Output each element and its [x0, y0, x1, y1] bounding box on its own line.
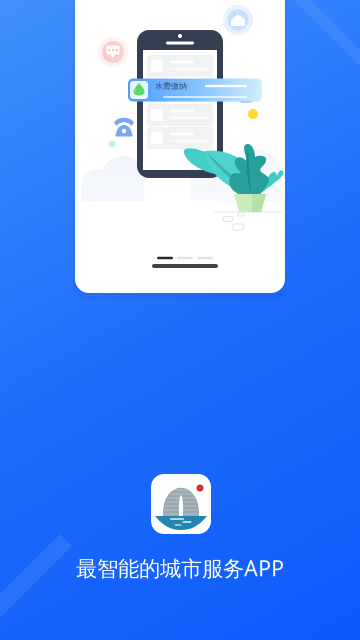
button[interactable]: App icon	[151, 474, 211, 534]
staticText: 水费缴纳	[155, 81, 187, 91]
staticText: 最智能的城市服务APP	[76, 554, 284, 582]
staticText: TV	[242, 94, 250, 102]
